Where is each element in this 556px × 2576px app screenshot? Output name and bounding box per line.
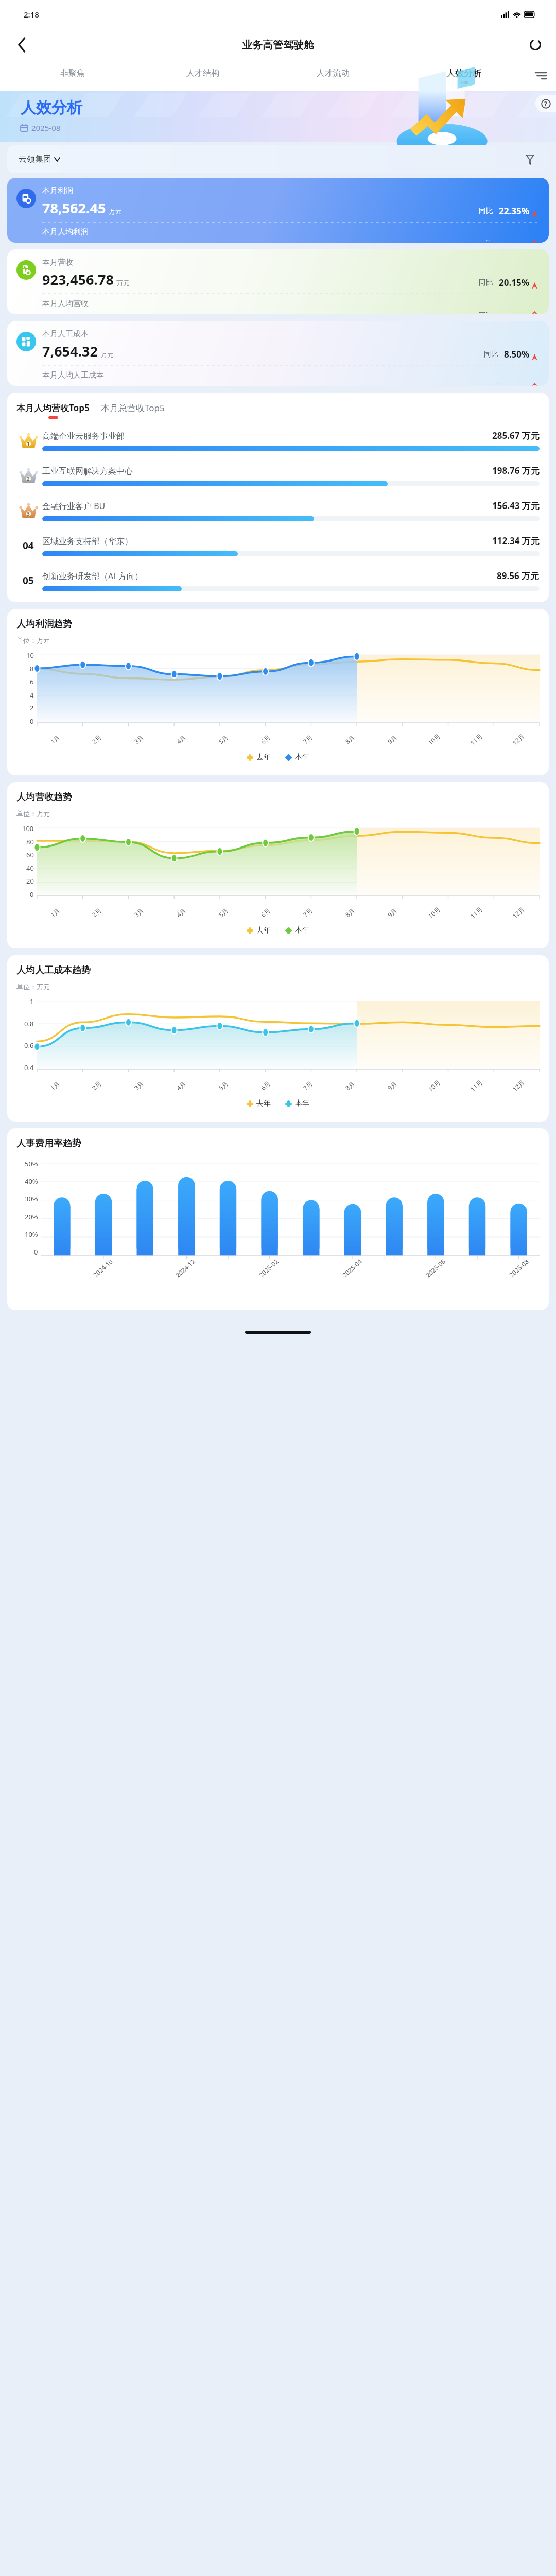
staticText: 2月 (90, 906, 103, 919)
staticText: 本月人均营收 (42, 299, 89, 309)
staticText: 0 (34, 1247, 38, 1257)
button[interactable]: 04 (16, 534, 540, 557)
button[interactable]: 05 (16, 569, 540, 592)
button[interactable]: Refresh (523, 32, 548, 57)
staticText: 本月人均营收Top5 (16, 402, 90, 414)
staticText: 2月 (90, 733, 103, 746)
staticText: 156.43 万元 (492, 500, 540, 512)
staticText: 0 (30, 890, 34, 899)
button[interactable]: More options (529, 64, 552, 88)
staticText: 4 (30, 690, 34, 700)
staticText: 万元 (100, 350, 114, 359)
staticText: 100 (22, 824, 34, 833)
staticText: 本月人均利润 (42, 227, 89, 237)
staticText: 人均人工成本趋势 (16, 964, 91, 976)
staticText: 本月人均人工成本 (42, 370, 104, 380)
staticText: 同比 (479, 207, 493, 216)
staticText: 本年 (295, 926, 309, 935)
staticText: 1月 (48, 1079, 61, 1092)
staticText: 7月 (301, 1079, 314, 1092)
staticText: 78,562.45 (42, 198, 106, 217)
staticText: 0.6 (24, 1041, 34, 1050)
staticText: 3 (27, 510, 30, 517)
staticText: 本月营收 (42, 258, 73, 267)
button[interactable]: 人效分析 (398, 62, 529, 89)
button[interactable]: Filter (521, 150, 538, 168)
staticText: 50% (25, 1159, 38, 1168)
button[interactable]: 3 (16, 499, 540, 522)
staticText: 22.35% (499, 205, 530, 217)
button[interactable]: Help (535, 95, 556, 112)
button[interactable]: 人才流动 (268, 62, 398, 89)
staticText: 0 (30, 717, 34, 726)
staticText: 4月 (175, 733, 187, 746)
staticText: 人均营收趋势 (16, 791, 72, 803)
staticText: 7月 (301, 906, 314, 919)
staticText: 40% (25, 1177, 38, 1186)
staticText: 8.50% (504, 348, 530, 360)
staticText: 9月 (386, 1079, 398, 1092)
staticText: 6月 (259, 733, 272, 746)
staticText: 本月利润 (42, 186, 73, 196)
staticText: 人均利润趋势 (16, 618, 72, 630)
staticText: 2025-08 (31, 123, 61, 133)
button[interactable]: 本月人工成本 (7, 321, 549, 386)
staticText: 0.8 (24, 1019, 34, 1028)
staticText: 同比 (479, 311, 493, 313)
staticText: 2:18 (24, 9, 39, 20)
staticText: 本年 (295, 1099, 309, 1108)
button[interactable]: 2 (16, 464, 540, 487)
button[interactable]: 人才结构 (137, 62, 268, 89)
staticText: 10月 (426, 732, 442, 747)
button[interactable]: 本月人均营收Top5 (16, 402, 90, 419)
staticText: 去年 (256, 926, 271, 935)
button[interactable]: 本月营收 (7, 249, 549, 314)
button[interactable]: 非聚焦 (7, 62, 137, 89)
staticText: 同比 (479, 278, 493, 287)
button[interactable]: Back (9, 32, 34, 57)
button[interactable]: 1 (16, 429, 540, 452)
staticText: 4月 (175, 906, 187, 919)
staticText: 20.15% (499, 277, 530, 289)
staticText: 40 (26, 863, 34, 873)
staticText: 人才流动 (317, 68, 350, 78)
staticText: 1月 (48, 906, 61, 919)
staticText: 11月 (468, 905, 484, 920)
staticText: 金融行业客户 BU (42, 500, 106, 512)
staticText: 923,456.78 (42, 270, 114, 289)
staticText: 2024-12 (174, 1257, 197, 1279)
staticText: 6月 (259, 906, 272, 919)
staticText: 2 (30, 703, 34, 713)
staticText: 5月 (217, 733, 230, 746)
staticText: 创新业务研发部（AI 方向） (42, 570, 143, 582)
staticText: 285.67 万元 (492, 430, 540, 442)
staticText: 89.56 万元 (497, 570, 540, 582)
staticText: 万元 (116, 279, 130, 287)
staticText: 云领集团 (19, 154, 51, 164)
staticText: 7月 (301, 733, 314, 746)
staticText: 6月 (259, 1079, 272, 1092)
button[interactable]: 本月利润 (7, 178, 549, 243)
staticText: 1 (30, 997, 34, 1006)
staticText: 2025-04 (341, 1257, 364, 1279)
staticText: 2024-10 (91, 1257, 115, 1279)
staticText: 8月 (343, 733, 356, 746)
staticText: 198.76 万元 (492, 465, 540, 477)
staticText: 1 (27, 440, 30, 447)
staticText: 10 (26, 651, 34, 660)
button[interactable]: 云领集团 (7, 145, 549, 173)
staticText: 10月 (426, 1078, 442, 1093)
staticText: 12月 (511, 905, 526, 920)
staticText: 业务高管驾驶舱 (242, 39, 314, 52)
staticText: 4月 (175, 1079, 187, 1092)
staticText: 7,654.32 (42, 342, 98, 361)
button[interactable]: 本月总营收Top5 (101, 402, 165, 414)
staticText: 2025-08 (507, 1257, 531, 1279)
staticText: 10月 (426, 905, 442, 920)
